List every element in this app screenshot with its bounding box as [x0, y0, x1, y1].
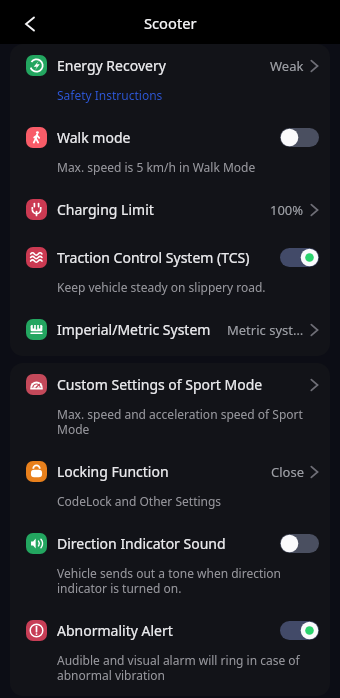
staticText: Vehicle sends out a tone when direction …	[57, 565, 296, 596]
button[interactable]: Walk mode	[10, 116, 330, 188]
button[interactable]: Toggle on	[280, 248, 319, 267]
button[interactable]: Abnormality Alert	[10, 609, 330, 696]
staticText: Direction Indicator Sound	[57, 534, 226, 553]
staticText: CodeLock and Other Settings	[57, 493, 222, 509]
staticText: Metric syst…	[227, 321, 304, 339]
button[interactable]: Traction Control System (TCS)	[10, 236, 330, 308]
staticText: Locking Function	[57, 462, 169, 481]
staticText: Keep vehicle steady on slippery road.	[57, 279, 266, 295]
button[interactable]: Back	[8, 3, 52, 44]
button[interactable]: Charging Limit	[10, 188, 330, 236]
staticText: 100%	[270, 201, 304, 219]
staticText: Safety Instructions	[57, 87, 163, 103]
button[interactable]: Toggle off	[280, 128, 319, 147]
staticText: Traction Control System (TCS)	[57, 248, 250, 267]
button[interactable]: Toggle off	[280, 534, 319, 553]
staticText: Walk mode	[57, 128, 131, 147]
staticText: Custom Settings of Sport Mode	[57, 375, 263, 394]
button[interactable]: Custom Settings of Sport Mode	[10, 363, 330, 450]
staticText: Weak	[270, 57, 304, 75]
button[interactable]: Imperial/Metric System	[10, 308, 330, 356]
button[interactable]: Locking Function	[10, 450, 330, 522]
staticText: Charging Limit	[57, 200, 154, 219]
staticText: Scooter	[144, 13, 197, 33]
staticText: Max. speed is 5 km/h in Walk Mode	[57, 159, 256, 175]
button[interactable]: Energy Recovery	[10, 44, 330, 116]
staticText: Max. speed and acceleration speed of Spo…	[57, 406, 306, 437]
staticText: Abnormality Alert	[57, 621, 173, 640]
button[interactable]: Toggle on	[280, 621, 319, 640]
staticText: Audible and visual alarm will ring in ca…	[57, 652, 302, 683]
staticText: Energy Recovery	[57, 56, 166, 75]
staticText: Imperial/Metric System	[57, 320, 211, 339]
staticText: Close	[271, 463, 304, 481]
button[interactable]: Direction Indicator Sound	[10, 522, 330, 609]
